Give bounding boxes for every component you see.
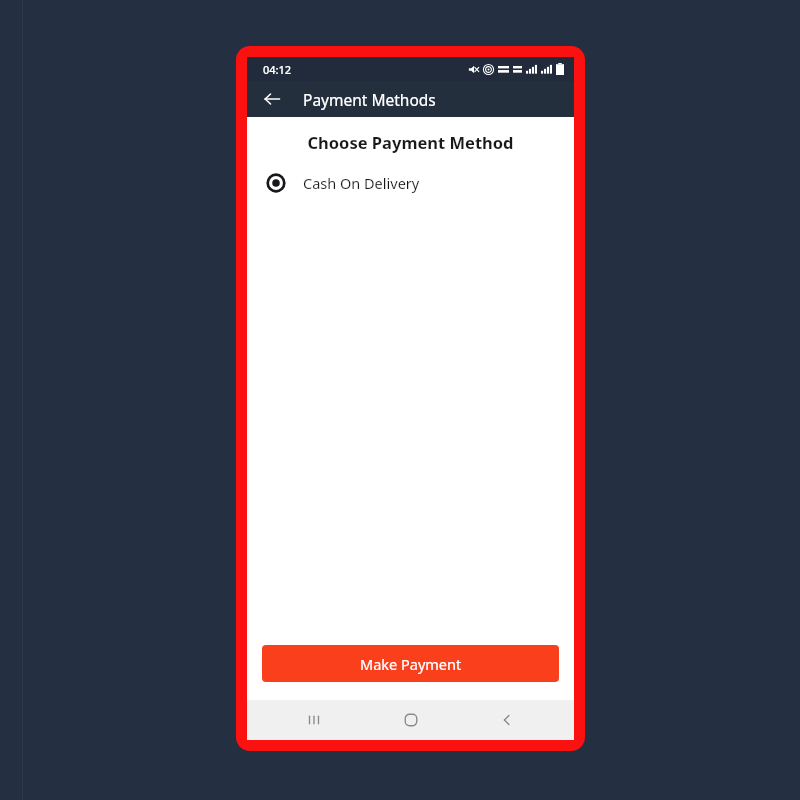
staticText: Cash On Delivery <box>303 173 420 193</box>
staticText: Choose Payment Method <box>247 131 574 153</box>
staticText: Payment Methods <box>303 89 436 110</box>
button[interactable]: Make Payment <box>262 645 559 682</box>
button[interactable]: Back <box>257 84 287 114</box>
button[interactable]: Recent apps <box>284 700 344 740</box>
button[interactable]: Home <box>381 700 441 740</box>
staticText: 04:12 <box>263 62 292 77</box>
button[interactable]: Cash On Delivery <box>247 167 574 199</box>
button[interactable]: Back <box>477 700 537 740</box>
staticText: Make Payment <box>360 654 462 674</box>
